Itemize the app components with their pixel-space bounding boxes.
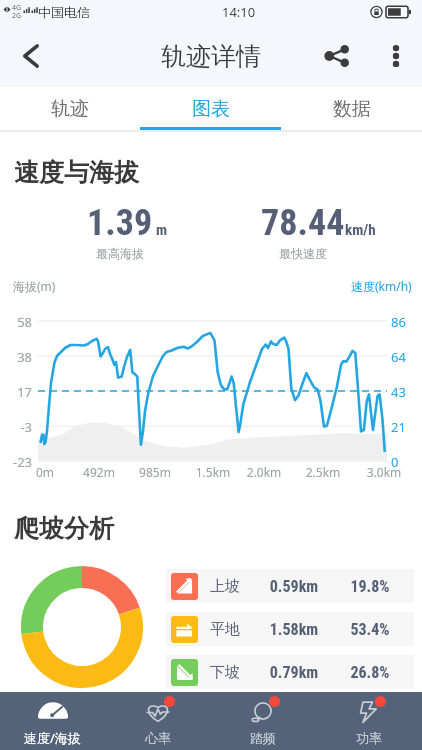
staticText: 86 <box>391 313 406 331</box>
staticText: 轨迹 <box>51 97 89 121</box>
staticText: 17 <box>0 383 32 401</box>
staticText: 心率 <box>145 730 171 746</box>
staticText: 38 <box>0 348 32 366</box>
staticText: 上坡 <box>210 577 240 596</box>
staticText: 0.59km <box>261 577 327 596</box>
button[interactable]: Share <box>305 24 369 87</box>
staticText: 0m <box>15 464 75 480</box>
button[interactable]: More options <box>369 24 422 87</box>
staticText: 0 <box>391 453 399 471</box>
staticText: -3 <box>0 418 32 436</box>
button[interactable]: 速度/海拔 <box>0 692 105 750</box>
staticText: 2.5km <box>293 464 353 480</box>
button[interactable]: 上坡 <box>166 569 414 603</box>
staticText: 下坡 <box>210 663 240 682</box>
staticText: -23 <box>0 453 32 471</box>
staticText: 4G <box>12 3 22 13</box>
staticText: 1.39 <box>87 202 153 244</box>
staticText: 43 <box>391 383 406 401</box>
staticText: 78.44 <box>261 202 345 244</box>
button[interactable]: 图表 <box>140 87 281 130</box>
staticText: 1.5km <box>183 464 243 480</box>
staticText: 轨迹详情 <box>161 41 261 72</box>
staticText: 最快速度 <box>279 246 327 261</box>
button[interactable]: Back <box>0 24 62 87</box>
staticText: km/h <box>345 221 376 239</box>
staticText: 492m <box>69 464 129 480</box>
staticText: m <box>156 221 168 239</box>
staticText: 图表 <box>192 97 230 121</box>
staticText: 64 <box>391 348 406 366</box>
staticText: 功率 <box>356 730 382 746</box>
staticText: 19.8% <box>340 577 400 596</box>
staticText: 海拔(m) <box>13 278 56 294</box>
staticText: 速度(km/h) <box>351 278 412 294</box>
staticText: 中国电信 <box>38 4 90 20</box>
staticText: 2.0km <box>234 464 294 480</box>
staticText: 53.4% <box>340 620 400 639</box>
staticText: 2G <box>12 11 22 21</box>
staticText: 0.79km <box>261 663 327 682</box>
button[interactable]: 平地 <box>166 612 414 646</box>
staticText: 21 <box>391 418 406 436</box>
button[interactable]: 心率 <box>105 692 210 750</box>
button[interactable]: 数据 <box>281 87 422 130</box>
button[interactable]: 轨迹 <box>0 87 140 130</box>
staticText: 速度/海拔 <box>24 729 81 747</box>
staticText: 985m <box>125 464 185 480</box>
button[interactable]: 踏频 <box>210 692 316 750</box>
staticText: 数据 <box>333 97 371 121</box>
staticText: 最高海拔 <box>96 246 144 261</box>
staticText: 14:10 <box>222 3 256 21</box>
staticText: 26.8% <box>340 663 400 682</box>
staticText: 平地 <box>210 620 240 639</box>
staticText: 速度与海拔 <box>14 157 139 188</box>
button[interactable]: 功率 <box>316 692 422 750</box>
staticText: 58 <box>0 313 32 331</box>
button[interactable]: 下坡 <box>166 655 414 689</box>
staticText: 爬坡分析 <box>14 513 114 544</box>
staticText: 3.0km <box>354 464 414 480</box>
staticText: 踏频 <box>250 730 276 746</box>
staticText: 1.58km <box>261 620 327 639</box>
